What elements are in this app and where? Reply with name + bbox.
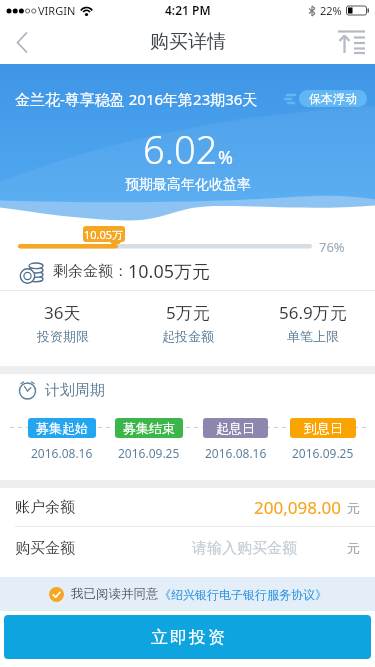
button[interactable]: 购买金额 (0, 527, 375, 577)
staticText: 募集起始 (36, 420, 88, 436)
button[interactable]: 立即投资 (4, 615, 371, 659)
staticText: 22% (320, 3, 342, 18)
staticText: 200,098.00 (254, 496, 341, 519)
staticText: 2016.08.16 (205, 445, 267, 461)
staticText: 起投金额 (162, 328, 214, 344)
button[interactable]: 募集起始 (28, 418, 96, 438)
staticText: 投资期限 (37, 328, 89, 344)
staticText: 立即投资 (150, 627, 226, 648)
staticText: 购买详情 (150, 30, 226, 54)
staticText: 56.9万元 (279, 301, 347, 324)
staticText: 金兰花-尊享稳盈 2016年第23期36天 (15, 89, 258, 109)
button[interactable]: 起息日 (203, 418, 268, 438)
staticText: 2016.08.16 (31, 445, 93, 461)
staticText: 账户余额 (15, 498, 75, 517)
staticText: 我已阅读并同意 (71, 586, 159, 602)
staticText: 2016.09.25 (118, 445, 180, 461)
staticText: 36天 (44, 301, 81, 324)
staticText: 请输入购买金额 (192, 539, 297, 558)
staticText: 募集结束 (123, 420, 175, 436)
staticText: 《绍兴银行电子银行服务协议》 (159, 587, 327, 602)
staticText: % (218, 145, 233, 170)
staticText: 单笔上限 (287, 328, 339, 344)
staticText: VIRGIN (38, 3, 76, 18)
staticText: 6.02 (143, 123, 218, 175)
staticText: 保本浮动 (309, 91, 357, 106)
staticText: 元 (347, 500, 360, 516)
button[interactable]: 募集结束 (115, 418, 183, 438)
button[interactable]: 我已阅读并同意 (0, 577, 375, 611)
staticText: 起息日 (216, 420, 255, 436)
button[interactable]: 到息日 (290, 418, 356, 438)
button[interactable] (0, 20, 44, 64)
button[interactable] (327, 20, 375, 64)
staticText: 元 (347, 540, 360, 556)
staticText: 计划周期 (45, 381, 105, 400)
staticText: 剩余金额： (53, 262, 128, 281)
staticText: 5万元 (166, 301, 210, 324)
staticText: 10.05万元 (128, 259, 211, 284)
staticText: 2016.09.25 (292, 445, 354, 461)
staticText: 购买金额 (15, 539, 75, 558)
staticText: 10.05万 (84, 227, 124, 242)
staticText: 预期最高年化收益率 (125, 176, 251, 194)
staticText: 到息日 (304, 420, 343, 436)
staticText: 4:21 PM (165, 2, 211, 18)
staticText: 76% (319, 238, 345, 256)
